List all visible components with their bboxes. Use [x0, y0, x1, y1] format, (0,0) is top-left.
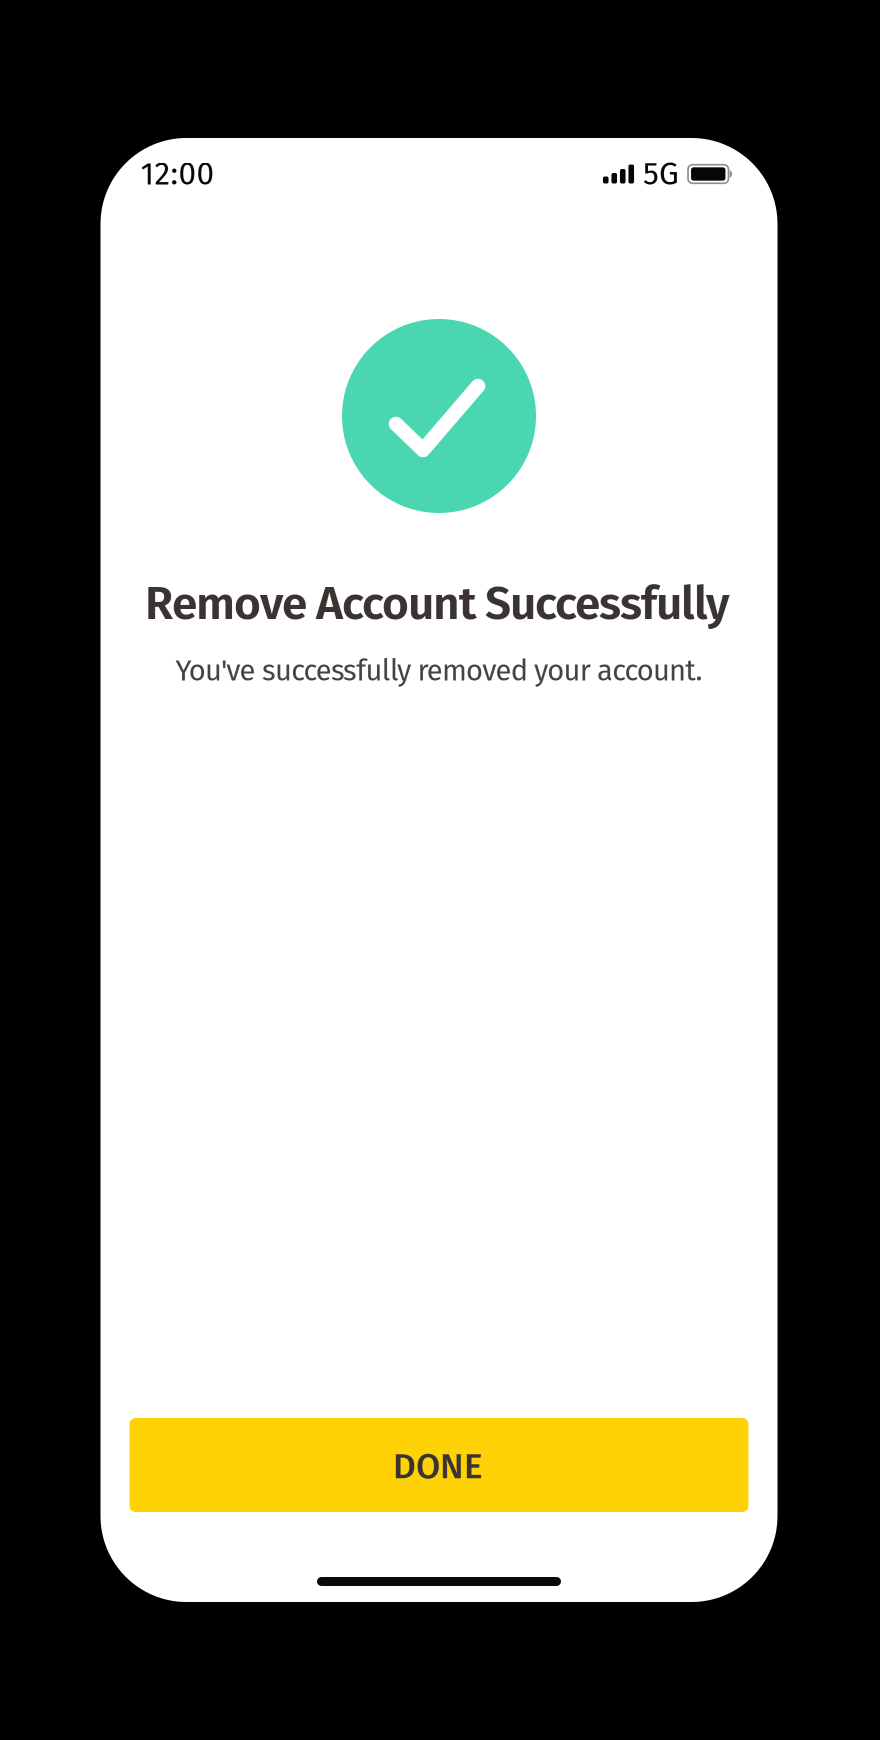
button[interactable]: DONE	[129, 1418, 748, 1512]
staticText: Remove Account Successfully	[145, 576, 730, 631]
staticText: 5G	[643, 155, 679, 193]
staticText: You've successfully removed your account…	[175, 653, 702, 688]
staticText: DONE	[393, 1445, 483, 1488]
staticText: 12:00	[140, 155, 214, 193]
